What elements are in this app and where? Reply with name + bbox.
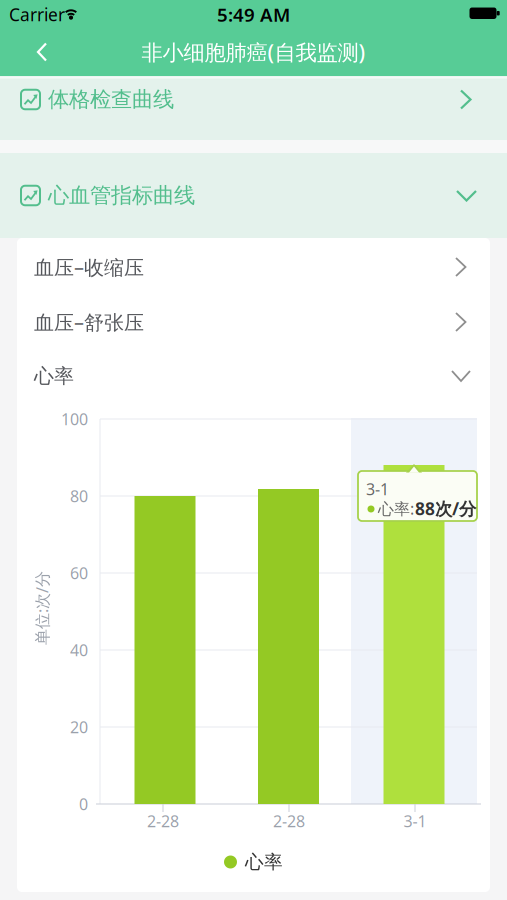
staticText: 心率 bbox=[34, 364, 74, 388]
staticText: 5:49 AM bbox=[217, 2, 290, 27]
staticText: 88次/分 bbox=[415, 497, 476, 520]
staticText: 40 bbox=[70, 639, 88, 661]
staticText: 3-1 bbox=[403, 810, 426, 832]
staticText: 80 bbox=[70, 485, 88, 507]
button[interactable]: 体格检查曲线 bbox=[0, 76, 507, 140]
staticText: 100 bbox=[61, 408, 88, 430]
staticText: 单位:次/分 bbox=[5, 597, 79, 619]
staticText: 体格检查曲线 bbox=[48, 86, 174, 113]
staticText: 60 bbox=[70, 562, 88, 584]
staticText: 血压–舒张压 bbox=[34, 309, 144, 335]
button[interactable]: 心率 bbox=[17, 349, 490, 403]
staticText: 2-28 bbox=[147, 810, 179, 832]
staticText: Carrier bbox=[9, 3, 65, 26]
staticText: 血压–收缩压 bbox=[34, 254, 144, 280]
button[interactable]: 血压–收缩压 bbox=[17, 240, 490, 294]
button[interactable]: 心率 bbox=[224, 850, 283, 873]
staticText: 3-1 bbox=[366, 478, 389, 500]
staticText: 心率 bbox=[245, 850, 283, 873]
button[interactable]: 心血管指标曲线 bbox=[0, 153, 507, 238]
button[interactable]: Back bbox=[20, 39, 64, 64]
staticText: 0 bbox=[79, 793, 88, 815]
staticText: 20 bbox=[70, 716, 88, 738]
button[interactable]: 血压–舒张压 bbox=[17, 295, 490, 349]
staticText: 2-28 bbox=[273, 810, 305, 832]
staticText: 心率: bbox=[378, 498, 414, 519]
staticText: 心血管指标曲线 bbox=[48, 182, 195, 209]
staticText: 非小细胞肺癌(自我监测) bbox=[141, 38, 365, 66]
